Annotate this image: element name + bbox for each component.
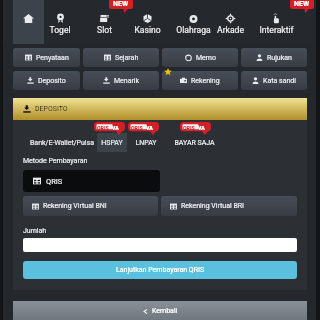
button[interactable]: Togel bbox=[41, 0, 79, 44]
button[interactable]: Rujukan bbox=[241, 48, 307, 67]
staticText: BAYAR SAJA bbox=[174, 139, 215, 147]
button[interactable]: Bank/E-Wallet/Pulsa bbox=[27, 133, 97, 152]
staticText: QRIS bbox=[183, 125, 195, 131]
staticText: Slot bbox=[97, 25, 112, 35]
button[interactable]: Menarik bbox=[83, 71, 159, 90]
staticText: Kembali bbox=[152, 307, 178, 315]
staticText: Interaktif bbox=[259, 25, 294, 35]
button[interactable]: Kembali bbox=[13, 301, 307, 320]
button[interactable]: Rekening Virtual BNI bbox=[23, 196, 158, 216]
staticText: Deposito bbox=[38, 77, 66, 85]
staticText: Jumlah bbox=[23, 227, 47, 235]
staticText: Olahraga bbox=[176, 25, 211, 35]
button[interactable]: Rekening Virtual BRI bbox=[161, 196, 297, 216]
button[interactable]: Sejarah bbox=[83, 48, 159, 67]
button[interactable]: Slot bbox=[87, 0, 121, 44]
staticText: VA bbox=[198, 125, 205, 131]
staticText: Lanjutkan Pembayaran QRIS bbox=[116, 266, 205, 274]
staticText: Menarik bbox=[114, 77, 140, 85]
staticText: Rekening Virtual BRI bbox=[181, 202, 244, 210]
staticText: Penyataan bbox=[36, 54, 69, 62]
button[interactable]: Interaktif bbox=[250, 0, 302, 44]
staticText: VA bbox=[112, 125, 119, 131]
button[interactable]: Olahraga bbox=[168, 0, 218, 44]
staticText: Metode Pembayaran bbox=[23, 157, 88, 165]
button[interactable]: Lanjutkan Pembayaran QRIS bbox=[23, 261, 297, 279]
staticText: Rujukan bbox=[267, 54, 292, 62]
staticText: LNPAY bbox=[135, 139, 157, 147]
button[interactable]: Kasino bbox=[125, 0, 170, 44]
staticText: Memo bbox=[196, 54, 216, 62]
staticText: QRIS bbox=[46, 177, 63, 186]
button[interactable]: Rekening bbox=[162, 71, 238, 90]
button[interactable]: Beranda bbox=[13, 0, 44, 44]
staticText: Togel bbox=[49, 25, 71, 35]
staticText: QRIS bbox=[97, 125, 109, 131]
button[interactable]: Penyataan bbox=[13, 48, 80, 67]
button[interactable]: Deposito bbox=[13, 71, 80, 90]
staticText: Rekening Virtual BNI bbox=[43, 202, 107, 210]
staticText: Kasino bbox=[134, 25, 161, 35]
staticText: NEW bbox=[113, 0, 129, 8]
button[interactable]: DEPOSITO bbox=[13, 98, 307, 120]
staticText: DEPOSITO bbox=[35, 105, 68, 113]
button[interactable]: LNPAY bbox=[130, 133, 162, 152]
button[interactable]: HSPAY bbox=[97, 133, 127, 152]
button[interactable]: Kata sandi bbox=[241, 71, 307, 90]
button[interactable]: BAYAR SAJA bbox=[166, 133, 222, 152]
button[interactable]: QRIS bbox=[23, 170, 160, 192]
staticText: Kata sandi bbox=[263, 77, 296, 85]
staticText: Sejarah bbox=[115, 54, 139, 62]
button[interactable] bbox=[23, 238, 297, 252]
staticText: VA bbox=[146, 125, 153, 131]
staticText: HSPAY bbox=[101, 139, 123, 147]
staticText: QRIS bbox=[131, 125, 143, 131]
button[interactable]: Memo bbox=[162, 48, 238, 67]
staticText: Arkade bbox=[217, 25, 244, 35]
staticText: NEW bbox=[294, 0, 310, 8]
staticText: Rekening bbox=[191, 77, 220, 85]
staticText: Bank/E-Wallet/Pulsa bbox=[30, 139, 94, 147]
button[interactable]: Arkade bbox=[209, 0, 251, 44]
